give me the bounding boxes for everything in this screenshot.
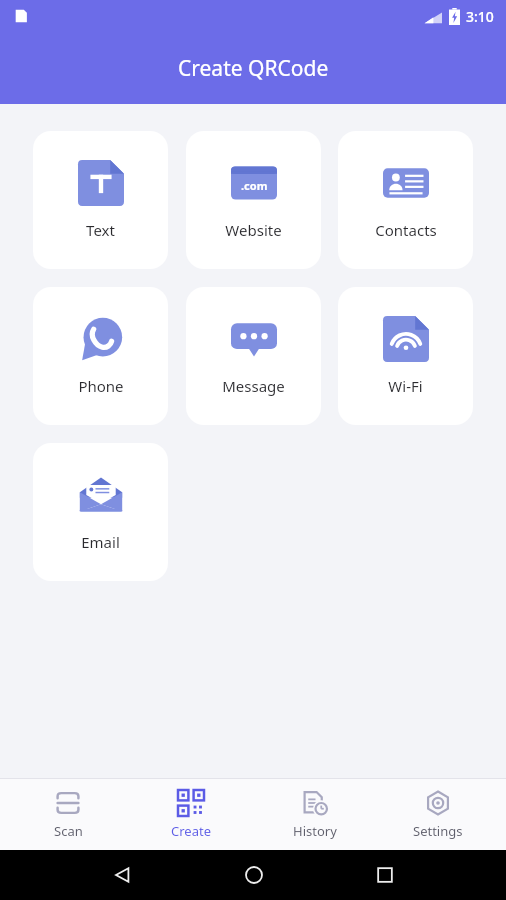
button[interactable]: Contacts [338, 131, 473, 269]
staticText: Wi-Fi [388, 376, 423, 396]
staticText: Settings [413, 822, 463, 840]
staticText: History [293, 822, 337, 840]
staticText: .com [241, 178, 268, 193]
staticText: Create [171, 822, 211, 840]
other: Recents [376, 866, 394, 884]
other: Back [112, 865, 132, 885]
button[interactable]: Wi-Fi [338, 287, 473, 425]
staticText: Email [81, 532, 120, 552]
other: Settings [425, 790, 451, 816]
button[interactable]: Phone [33, 287, 168, 425]
button[interactable]: .com [186, 131, 321, 269]
other: Home [244, 865, 264, 885]
other: Create [178, 790, 204, 816]
other: History [302, 790, 328, 816]
button[interactable]: Settings [383, 779, 493, 850]
button[interactable]: History [260, 779, 370, 850]
button[interactable]: Text [33, 131, 168, 269]
staticText: Create QRCode [178, 54, 329, 83]
staticText: Text [86, 220, 115, 240]
staticText: Scan [54, 822, 83, 840]
staticText: Contacts [375, 220, 437, 240]
staticText: 3:10 [466, 7, 494, 26]
other: Scan [55, 790, 81, 816]
button[interactable]: Email [33, 443, 168, 581]
button[interactable]: Scan [13, 779, 123, 850]
staticText: Phone [78, 376, 124, 396]
staticText: Message [222, 376, 285, 396]
button[interactable]: Create [136, 779, 246, 850]
staticText: Website [225, 220, 282, 240]
button[interactable]: Message [186, 287, 321, 425]
